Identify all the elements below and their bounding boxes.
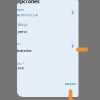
- staticText: Catálogo: [16, 23, 28, 26]
- button[interactable]: Aceptar: [62, 81, 78, 87]
- staticText: LAZ480351ZL4: [16, 13, 38, 17]
- button[interactable]: Catálogo: [13, 23, 78, 38]
- staticText: Emisor: [16, 8, 24, 12]
- staticText: Mes: [16, 42, 21, 45]
- staticText: Aceptar: [65, 82, 76, 86]
- staticText: Opciones: [16, 0, 40, 5]
- button[interactable]: Año *: [13, 62, 78, 78]
- staticText: EJEMPLO: [16, 30, 27, 33]
- button[interactable]: Emisor: [13, 8, 78, 21]
- staticText: Noviembre: [16, 49, 32, 53]
- staticText: 2024: [16, 66, 24, 70]
- staticText: Año *: [16, 62, 24, 66]
- button[interactable]: Mes: [13, 42, 78, 58]
